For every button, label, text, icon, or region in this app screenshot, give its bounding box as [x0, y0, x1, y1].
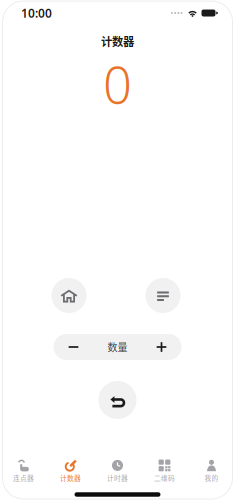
staticText: 计数器: [60, 473, 81, 483]
button[interactable]: 主页: [51, 278, 86, 313]
staticText: 计数器: [101, 33, 134, 49]
button[interactable]: 重置: [98, 381, 136, 419]
staticText: 0: [103, 50, 132, 118]
button[interactable]: 减少: [54, 334, 92, 360]
button[interactable]: 计时器: [94, 450, 141, 482]
button[interactable]: 二维码: [141, 450, 188, 482]
staticText: 计时器: [107, 473, 128, 483]
button[interactable]: 我的: [188, 450, 235, 482]
button[interactable]: 计数器: [47, 450, 94, 482]
staticText: 我的: [204, 473, 218, 483]
staticText: 二维码: [154, 473, 175, 483]
staticText: 连点器: [13, 473, 34, 483]
staticText: 数量: [107, 340, 127, 354]
button[interactable]: 连点器: [0, 450, 47, 482]
staticText: 10:00: [21, 5, 52, 21]
button[interactable]: 增加: [142, 334, 180, 360]
button[interactable]: 列表: [145, 278, 180, 313]
